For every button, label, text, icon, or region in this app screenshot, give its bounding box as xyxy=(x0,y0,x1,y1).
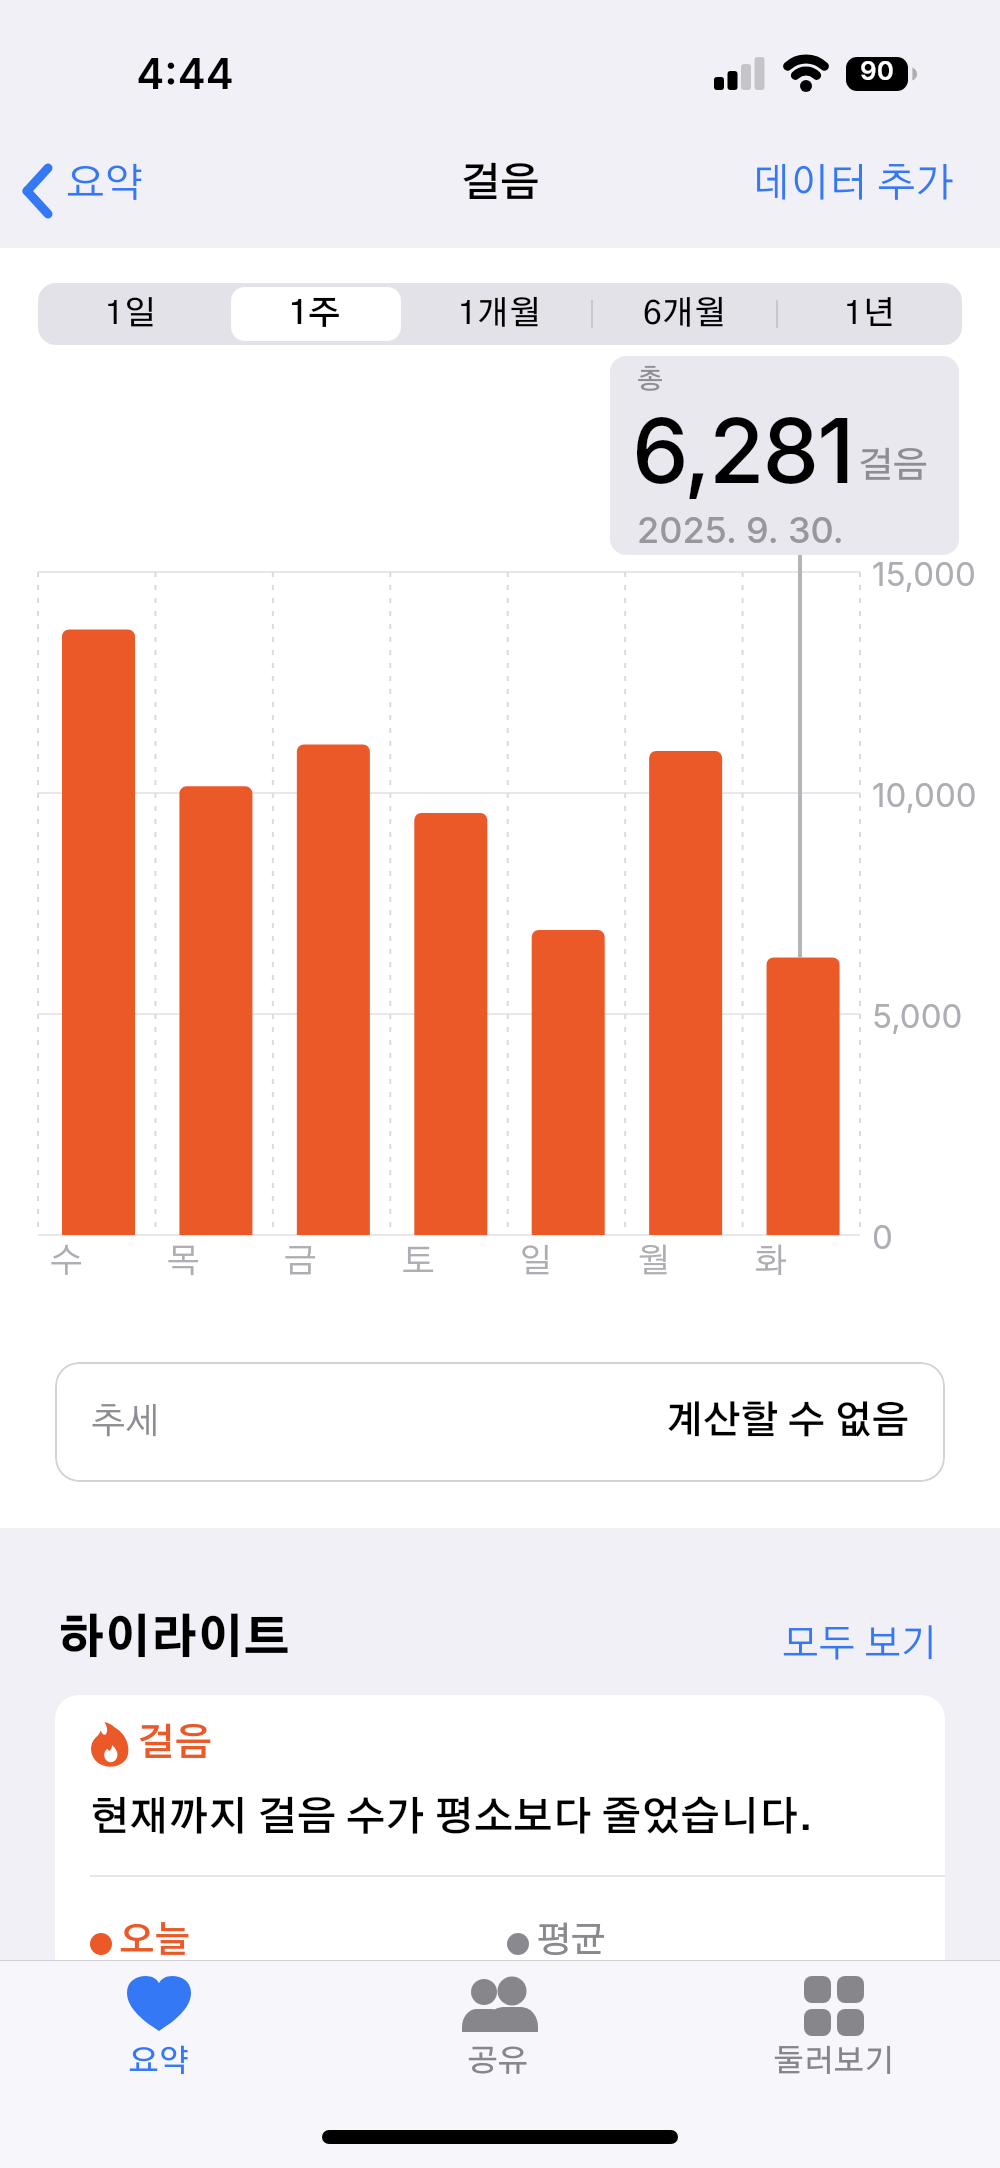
staticText: 10,000 xyxy=(872,775,977,815)
staticText: 1년 xyxy=(844,298,895,331)
staticText: 1일 xyxy=(105,298,156,331)
button[interactable]: 둘러보기 xyxy=(764,1964,904,2094)
staticText: 4:44 xyxy=(120,48,250,99)
staticText: 1개월 xyxy=(458,298,541,331)
button[interactable]: 추세 xyxy=(55,1362,945,1482)
staticText: 하이라이트 xyxy=(58,1616,290,1662)
staticText: 총 xyxy=(637,366,664,393)
staticText: 모두 보기 xyxy=(782,1626,938,1664)
staticText: 데이터 추가 xyxy=(752,164,954,204)
staticText: 요약 xyxy=(89,2046,229,2077)
button[interactable]: 모두 보기 xyxy=(782,1626,938,1664)
button[interactable]: 1년 xyxy=(777,283,962,345)
staticText: 요약 xyxy=(66,164,143,204)
staticText: 오늘 xyxy=(119,1923,190,1959)
button[interactable]: 공유 xyxy=(428,1964,568,2094)
button[interactable]: 요약 xyxy=(66,164,143,204)
button[interactable]: 1개월 xyxy=(407,283,592,345)
button[interactable]: 걸음 xyxy=(55,1695,945,1985)
staticText: 걸음 xyxy=(858,448,929,484)
button[interactable] xyxy=(24,166,54,216)
staticText: 걸음 xyxy=(0,164,1000,204)
staticText: 6개월 xyxy=(643,298,726,331)
staticText: 90 xyxy=(846,55,908,86)
staticText: 계산할 수 없음 xyxy=(666,1403,909,1441)
staticText: 토 xyxy=(402,1245,435,1279)
staticText: 현재까지 걸음 수가 평소보다 줄었습니다. xyxy=(90,1798,813,1838)
staticText: 평균 xyxy=(536,1923,607,1959)
staticText: 월 xyxy=(637,1245,670,1279)
staticText: 1주 xyxy=(289,298,341,331)
button[interactable]: 데이터 추가 xyxy=(752,164,954,204)
staticText: 6,281 xyxy=(632,396,853,505)
staticText: 추세 xyxy=(91,1404,161,1440)
staticText: 일 xyxy=(519,1245,552,1279)
staticText: 걸음 xyxy=(137,1725,212,1763)
staticText: 2025. 9. 30. xyxy=(637,508,844,552)
staticText: 화 xyxy=(754,1245,787,1279)
staticText: 15,000 xyxy=(872,554,976,594)
staticText: 0 xyxy=(872,1217,893,1257)
staticText: 공유 xyxy=(428,2046,568,2077)
staticText: 목 xyxy=(167,1245,200,1279)
staticText: 둘러보기 xyxy=(764,2046,904,2077)
button[interactable]: 1일 xyxy=(38,283,223,345)
staticText: 수 xyxy=(50,1245,83,1279)
button[interactable]: 6개월 xyxy=(592,283,777,345)
staticText: 5,000 xyxy=(872,996,963,1036)
button[interactable]: 요약 xyxy=(89,1964,229,2094)
button[interactable]: 1주 xyxy=(222,283,407,345)
staticText: 금 xyxy=(284,1245,317,1279)
